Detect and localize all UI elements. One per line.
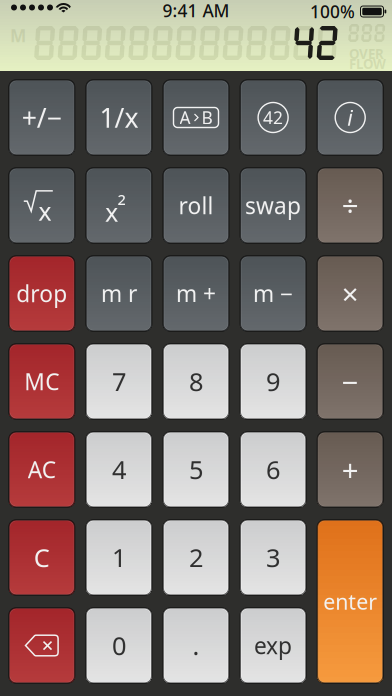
staticText: 100% bbox=[310, 0, 355, 23]
button[interactable]: 1 bbox=[86, 520, 152, 595]
button[interactable]: exp bbox=[240, 608, 306, 683]
button[interactable]: roll bbox=[163, 168, 229, 243]
staticText: ÷ bbox=[342, 186, 359, 225]
button[interactable]: x bbox=[86, 168, 152, 243]
staticText: MC bbox=[24, 366, 59, 396]
staticText: 2 bbox=[117, 190, 125, 209]
staticText: i bbox=[347, 103, 353, 132]
button[interactable]: m − bbox=[240, 256, 306, 331]
button[interactable]: 9 bbox=[240, 344, 306, 419]
button[interactable]: m r bbox=[86, 256, 152, 331]
staticText: enter bbox=[323, 587, 377, 616]
staticText: 7 bbox=[112, 365, 126, 398]
staticText: 0 bbox=[112, 629, 126, 662]
staticText: 4 bbox=[112, 453, 126, 486]
button[interactable]: ÷ bbox=[317, 168, 383, 243]
staticText: OVER bbox=[349, 45, 384, 63]
staticText: m − bbox=[253, 278, 293, 308]
staticText: +/− bbox=[22, 100, 62, 135]
staticText: M bbox=[10, 24, 26, 47]
staticText: − bbox=[342, 362, 359, 401]
staticText: 3 bbox=[266, 541, 280, 574]
staticText: A bbox=[179, 106, 190, 129]
staticText: drop bbox=[16, 278, 67, 308]
button[interactable]: MC bbox=[9, 344, 75, 419]
button[interactable]: 3 bbox=[240, 520, 306, 595]
button[interactable]: C bbox=[9, 520, 75, 595]
staticText: . bbox=[192, 629, 199, 662]
button[interactable]: 1/x bbox=[86, 80, 152, 155]
button[interactable]: +/− bbox=[9, 80, 75, 155]
button[interactable]: swap bbox=[240, 168, 306, 243]
staticText: 5 bbox=[189, 453, 203, 486]
staticText: 9:41 AM bbox=[162, 0, 229, 22]
button[interactable]: drop bbox=[9, 256, 75, 331]
button[interactable]: Constant 42 bbox=[240, 80, 306, 155]
button[interactable]: m + bbox=[163, 256, 229, 331]
staticText: 2 bbox=[189, 541, 203, 574]
staticText: m r bbox=[101, 278, 137, 308]
staticText: x bbox=[38, 194, 51, 228]
staticText: exp bbox=[254, 630, 292, 660]
staticText: swap bbox=[245, 190, 301, 220]
button[interactable]: + bbox=[317, 432, 383, 507]
staticText: 1/x bbox=[99, 100, 138, 135]
staticText: FLOW bbox=[349, 55, 386, 73]
staticText: 9 bbox=[266, 365, 280, 398]
staticText: m + bbox=[176, 278, 216, 308]
button[interactable]: Delete bbox=[9, 608, 75, 683]
staticText: 8 bbox=[189, 365, 203, 398]
button[interactable]: 6 bbox=[240, 432, 306, 507]
button[interactable]: . bbox=[163, 608, 229, 683]
staticText: 42 bbox=[263, 106, 283, 129]
button[interactable]: 5 bbox=[163, 432, 229, 507]
button[interactable]: 8 bbox=[163, 344, 229, 419]
button[interactable]: × bbox=[317, 256, 383, 331]
button[interactable]: − bbox=[317, 344, 383, 419]
staticText: + bbox=[342, 450, 359, 489]
button[interactable]: x bbox=[9, 168, 75, 243]
button[interactable]: enter bbox=[317, 520, 383, 683]
staticText: roll bbox=[178, 190, 213, 220]
staticText: B bbox=[201, 106, 212, 129]
button[interactable]: AC bbox=[9, 432, 75, 507]
button[interactable]: 7 bbox=[86, 344, 152, 419]
button[interactable]: Info bbox=[317, 80, 383, 155]
staticText: C bbox=[34, 541, 50, 574]
staticText: 6 bbox=[266, 453, 280, 486]
staticText: x bbox=[105, 195, 118, 229]
button[interactable]: Swap A and B bbox=[163, 80, 229, 155]
staticText: × bbox=[342, 274, 359, 313]
button[interactable]: 2 bbox=[163, 520, 229, 595]
staticText: 1 bbox=[112, 541, 126, 574]
staticText: AC bbox=[28, 454, 56, 484]
button[interactable]: 4 bbox=[86, 432, 152, 507]
button[interactable]: 0 bbox=[86, 608, 152, 683]
